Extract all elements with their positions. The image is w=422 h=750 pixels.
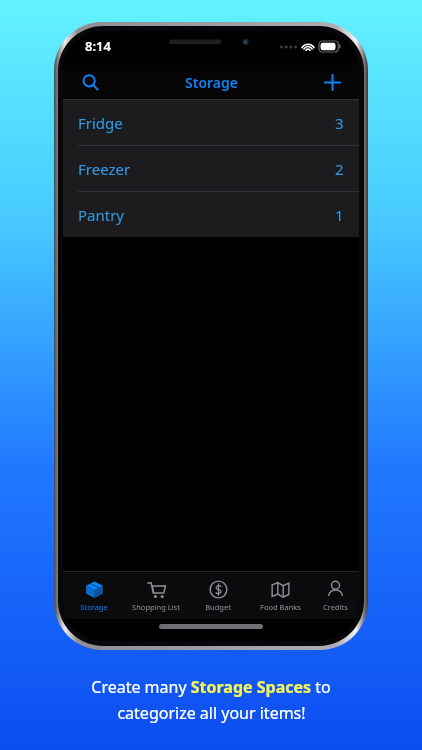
button[interactable]: Search <box>73 65 107 99</box>
button[interactable]: Credits <box>311 572 359 619</box>
staticText: 8:14 <box>85 37 111 55</box>
staticText: Create many Storage Spaces to <box>91 676 331 698</box>
button[interactable]: Budget <box>187 572 249 619</box>
button[interactable]: Freezer <box>63 146 359 192</box>
staticText: Storage <box>80 602 108 612</box>
staticText: 3 <box>335 113 344 133</box>
button[interactable]: Food Banks <box>249 572 311 619</box>
staticText: Budget <box>205 602 231 612</box>
staticText: categorize all your items! <box>117 702 306 724</box>
staticText: Food Banks <box>260 602 301 612</box>
button[interactable]: Add storage space <box>315 65 349 99</box>
staticText: 2 <box>335 159 344 179</box>
staticText: 1 <box>335 205 344 225</box>
staticText: Pantry <box>78 205 125 225</box>
button[interactable]: Pantry <box>63 192 359 237</box>
staticText: Credits <box>323 602 348 612</box>
button[interactable]: Shopping List <box>125 572 187 619</box>
staticText: Shopping List <box>132 602 180 612</box>
button[interactable]: Storage <box>63 572 125 619</box>
staticText: Storage <box>185 73 238 92</box>
staticText: Freezer <box>78 159 131 179</box>
button[interactable]: Fridge <box>63 100 359 146</box>
staticText: Fridge <box>78 113 123 133</box>
